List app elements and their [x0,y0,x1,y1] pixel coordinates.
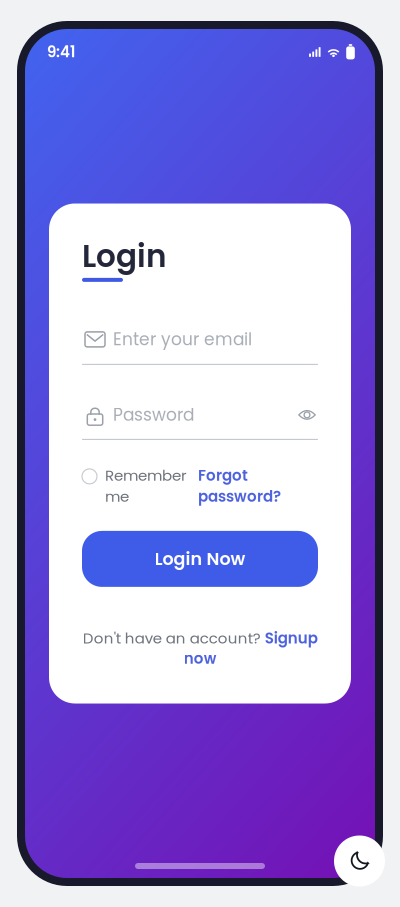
button[interactable]: Show password [296,404,318,426]
staticText: Forgot password? [198,465,281,507]
staticText: Don't have an account? Signup now [82,628,317,669]
button[interactable]: Don't have an account? Signup now [82,628,318,669]
staticText: Password [113,403,194,427]
button[interactable]: Remember me [82,465,198,507]
button[interactable]: Toggle dark mode [334,835,385,887]
staticText: Login Now [154,547,245,571]
staticText: Login [82,234,166,278]
staticText: Remember me [105,465,187,507]
staticText: 9:41 [47,41,75,62]
button[interactable]: Login Now [82,531,318,587]
button[interactable]: Forgot password? [198,465,288,507]
staticText: Enter your email [113,327,252,351]
